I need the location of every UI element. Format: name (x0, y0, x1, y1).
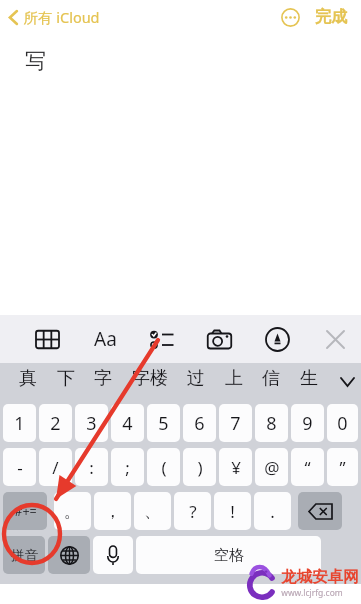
button[interactable]: 9 (291, 404, 324, 442)
button[interactable]: 空格 (136, 536, 321, 574)
button[interactable]: 拼音 (3, 536, 45, 574)
staticText: ” (339, 456, 346, 479)
staticText: ， (104, 501, 121, 522)
staticText: 9 (302, 411, 313, 436)
button[interactable]: 下 (53, 363, 79, 394)
staticText: 生 (300, 367, 318, 390)
staticText: 下 (57, 367, 75, 390)
staticText: ! (230, 500, 235, 523)
staticText: 6 (194, 411, 205, 436)
button[interactable]: / (39, 448, 72, 486)
staticText: 过 (187, 367, 205, 390)
button[interactable]: ! (214, 492, 251, 530)
staticText: 、 (144, 501, 161, 522)
button[interactable]: 6 (183, 404, 216, 442)
button[interactable]: 过 (183, 363, 209, 394)
button[interactable]: 4 (111, 404, 144, 442)
button[interactable]: Aa (86, 320, 124, 358)
button[interactable]: #+= (3, 492, 47, 530)
button[interactable]: ? (174, 492, 211, 530)
button[interactable]: 字 (90, 363, 116, 394)
staticText: 空格 (214, 546, 244, 565)
staticText: - (17, 456, 23, 479)
button[interactable]: ; (111, 448, 144, 486)
staticText: 4 (122, 411, 133, 436)
button[interactable]: 。 (54, 492, 91, 530)
button[interactable]: ) (183, 448, 216, 486)
button[interactable]: More options (275, 2, 305, 32)
staticText: 1 (14, 411, 25, 436)
staticText: ) (197, 456, 203, 479)
staticText: 字楼 (132, 367, 168, 390)
button[interactable]: ” (327, 448, 358, 486)
button[interactable]: 5 (147, 404, 180, 442)
staticText: . (270, 500, 275, 523)
button[interactable]: . (254, 492, 291, 530)
button[interactable]: 完成 (308, 1, 354, 33)
button[interactable]: Expand candidates (333, 368, 361, 396)
button[interactable]: Markup (260, 322, 294, 356)
staticText: 所有 iCloud (23, 7, 100, 27)
staticText: 。 (64, 501, 81, 522)
staticText: : (89, 456, 94, 479)
button[interactable]: ¥ (219, 448, 252, 486)
staticText: 0 (337, 411, 348, 436)
staticText: 写 (25, 48, 46, 74)
staticText: @ (264, 456, 280, 479)
button[interactable]: 所有 iCloud (0, 2, 110, 32)
button[interactable]: : (75, 448, 108, 486)
button[interactable]: Hide keyboard (318, 322, 352, 356)
staticText: 真 (19, 367, 37, 390)
button[interactable]: 8 (255, 404, 288, 442)
staticText: 上 (225, 367, 243, 390)
staticText: #+= (14, 503, 37, 520)
staticText: 拼音 (11, 547, 38, 564)
button[interactable]: 真 (15, 363, 41, 394)
button[interactable]: 上 (221, 363, 247, 394)
button[interactable]: “ (291, 448, 324, 486)
button[interactable]: 字楼 (128, 363, 172, 394)
staticText: 8 (266, 411, 277, 436)
button[interactable]: - (3, 448, 36, 486)
staticText: 信 (262, 367, 280, 390)
button[interactable]: @ (255, 448, 288, 486)
button[interactable]: Checklist (144, 322, 178, 356)
button[interactable]: ( (147, 448, 180, 486)
staticText: 完成 (315, 7, 347, 27)
staticText: ( (161, 456, 167, 479)
staticText: 3 (86, 411, 97, 436)
button[interactable]: Backspace (298, 492, 342, 530)
staticText: 龙城安卓网 (281, 567, 359, 587)
button[interactable]: Insert table (30, 322, 64, 356)
staticText: ; (125, 456, 130, 479)
button[interactable]: 0 (327, 404, 358, 442)
staticText: 5 (158, 411, 169, 436)
button[interactable]: ， (94, 492, 131, 530)
button[interactable]: 1 (3, 404, 36, 442)
staticText: 7 (230, 411, 241, 436)
staticText: Aa (94, 326, 117, 352)
staticText: 字 (94, 367, 112, 390)
button[interactable]: 、 (134, 492, 171, 530)
staticText: “ (304, 456, 311, 479)
button[interactable]: 信 (258, 363, 284, 394)
staticText: ? (189, 500, 197, 523)
button[interactable]: Dictation (93, 536, 133, 574)
staticText: 2 (50, 411, 61, 436)
staticText: ¥ (231, 456, 241, 479)
button[interactable]: 2 (39, 404, 72, 442)
button[interactable]: 7 (219, 404, 252, 442)
button[interactable]: 生 (296, 363, 322, 394)
button[interactable]: Camera (202, 322, 236, 356)
button[interactable]: Switch language (48, 536, 90, 574)
staticText: www.lcjrfg.com (281, 587, 343, 599)
button[interactable]: 3 (75, 404, 108, 442)
staticText: / (52, 456, 59, 479)
